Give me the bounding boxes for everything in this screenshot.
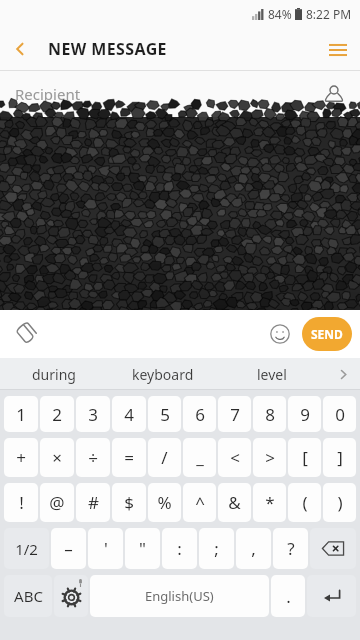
button[interactable]: 1/2 xyxy=(4,528,49,569)
button[interactable]: Add contact xyxy=(316,76,352,112)
staticText: ? xyxy=(287,537,295,560)
staticText: Recipient xyxy=(15,84,81,104)
staticText: # xyxy=(88,491,99,514)
button[interactable]: ] xyxy=(323,438,356,477)
staticText: 8:22 PM xyxy=(306,6,352,22)
staticText: ! xyxy=(19,491,24,514)
button[interactable]: @ xyxy=(40,483,74,522)
button[interactable]: level xyxy=(217,358,326,390)
button[interactable]: ! xyxy=(4,483,38,522)
button[interactable]: English(US) xyxy=(90,575,269,617)
button[interactable]: . xyxy=(271,575,305,617)
staticText: $ xyxy=(124,491,134,514)
button[interactable]: " xyxy=(125,528,160,569)
staticText: / xyxy=(161,446,168,469)
button[interactable]: × xyxy=(40,438,74,477)
staticText: 7 xyxy=(230,403,240,426)
staticText: > xyxy=(265,446,275,469)
staticText: < xyxy=(230,446,240,469)
button[interactable]: Backspace xyxy=(310,528,356,569)
staticText: 1 xyxy=(16,403,26,426)
button[interactable]: 0 xyxy=(323,396,356,432)
staticText: @ xyxy=(49,491,65,514)
staticText: × xyxy=(52,446,62,469)
button[interactable]: Settings xyxy=(54,575,88,617)
staticText: & xyxy=(228,491,241,514)
button[interactable]: ) xyxy=(323,483,356,522)
staticText: ] xyxy=(337,446,343,469)
button[interactable]: – xyxy=(51,528,86,569)
button[interactable]: / xyxy=(148,438,181,477)
staticText: % xyxy=(157,491,172,514)
staticText: during xyxy=(32,365,76,384)
button[interactable]: SEND xyxy=(302,317,352,351)
button[interactable]: Back xyxy=(0,29,40,69)
staticText: , xyxy=(251,537,256,560)
button[interactable]: ABC xyxy=(4,575,52,617)
button[interactable]: , xyxy=(236,528,271,569)
staticText: : xyxy=(177,537,182,560)
staticText: 4 xyxy=(124,403,134,426)
button[interactable]: Attach xyxy=(4,313,46,355)
button[interactable]: ( xyxy=(288,483,321,522)
button[interactable]: 8 xyxy=(253,396,286,432)
button[interactable]: ÷ xyxy=(76,438,110,477)
button[interactable]: 2 xyxy=(40,396,74,432)
button[interactable]: 4 xyxy=(112,396,146,432)
staticText: 8 xyxy=(265,403,275,426)
button[interactable]: + xyxy=(4,438,38,477)
staticText: " xyxy=(139,537,146,560)
staticText: + xyxy=(16,446,26,469)
button[interactable]: during xyxy=(0,358,108,390)
button[interactable]: * xyxy=(253,483,286,522)
button[interactable]: & xyxy=(218,483,251,522)
staticText: 0 xyxy=(335,403,345,426)
button[interactable]: # xyxy=(76,483,110,522)
staticText: NEW MESSAGE xyxy=(48,38,167,60)
staticText: 9 xyxy=(300,403,310,426)
button[interactable]: More options xyxy=(316,28,360,70)
button[interactable]: _ xyxy=(183,438,216,477)
button[interactable]: > xyxy=(253,438,286,477)
staticText: keyboard xyxy=(132,365,194,384)
button[interactable]: < xyxy=(218,438,251,477)
button[interactable]: Recipient xyxy=(0,71,360,117)
button[interactable]: % xyxy=(148,483,181,522)
button[interactable]: $ xyxy=(112,483,146,522)
staticText: English(US) xyxy=(145,587,214,605)
staticText: ; xyxy=(214,537,219,560)
button[interactable]: : xyxy=(162,528,197,569)
staticText: = xyxy=(124,446,134,469)
staticText: _ xyxy=(196,446,204,469)
staticText: SEND xyxy=(311,326,343,342)
button[interactable]: ? xyxy=(273,528,308,569)
button[interactable]: 5 xyxy=(148,396,181,432)
staticText: * xyxy=(265,491,275,514)
button[interactable]: keyboard xyxy=(108,358,217,390)
staticText: [ xyxy=(302,446,308,469)
staticText: 6 xyxy=(195,403,205,426)
button[interactable]: ; xyxy=(199,528,234,569)
staticText: ) xyxy=(337,491,343,514)
button[interactable]: 6 xyxy=(183,396,216,432)
staticText: 2 xyxy=(52,403,62,426)
button[interactable]: ^ xyxy=(183,483,216,522)
button[interactable]: Enter xyxy=(307,575,356,617)
button[interactable]: 1 xyxy=(4,396,38,432)
button[interactable]: 3 xyxy=(76,396,110,432)
staticText: level xyxy=(257,365,287,384)
staticText: 5 xyxy=(160,403,170,426)
staticText: 84% xyxy=(268,6,292,22)
button[interactable]: Emoji xyxy=(260,314,300,354)
button[interactable]: 9 xyxy=(288,396,321,432)
staticText: 3 xyxy=(88,403,98,426)
staticText: ABC xyxy=(14,586,43,606)
button[interactable]: 7 xyxy=(218,396,251,432)
staticText: ^ xyxy=(195,491,205,514)
staticText: 1/2 xyxy=(15,539,38,559)
staticText: ( xyxy=(302,491,308,514)
button[interactable]: More suggestions xyxy=(326,358,360,390)
button[interactable]: ' xyxy=(88,528,123,569)
button[interactable]: [ xyxy=(288,438,321,477)
button[interactable]: = xyxy=(112,438,146,477)
